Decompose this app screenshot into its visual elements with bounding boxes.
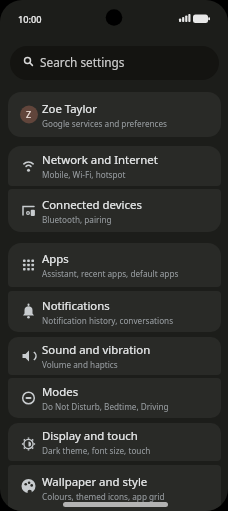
- staticText: Bluetooth, pairing: [42, 214, 112, 225]
- button[interactable]: Apps: [8, 243, 221, 287]
- staticText: Z: [26, 108, 32, 120]
- button[interactable]: Connected devices: [8, 189, 221, 232]
- staticText: Sound and vibration: [42, 342, 151, 358]
- staticText: Connected devices: [42, 197, 142, 213]
- button[interactable]: Sound and vibration: [8, 337, 221, 375]
- button[interactable]: Wallpaper and style: [8, 465, 221, 511]
- staticText: Zoe Taylor: [42, 101, 97, 117]
- button[interactable]: Modes: [8, 378, 221, 418]
- button[interactable]: Display and touch: [8, 423, 221, 461]
- button[interactable]: Notifications: [8, 291, 221, 332]
- staticText: Search settings: [40, 54, 125, 70]
- button[interactable]: Zoe Taylor: [8, 92, 221, 137]
- staticText: Google services and preferences: [42, 118, 168, 129]
- staticText: Volume and haptics: [42, 359, 118, 370]
- staticText: Assistant, recent apps, default apps: [42, 268, 179, 279]
- staticText: Notifications: [42, 298, 110, 314]
- staticText: Wallpaper and style: [42, 474, 148, 490]
- staticText: Mobile, Wi-Fi, hotspot: [42, 169, 126, 180]
- button[interactable]: Network and Internet: [8, 146, 221, 186]
- staticText: Notification history, conversations: [42, 315, 174, 326]
- staticText: Dark theme, font size, touch: [42, 445, 151, 456]
- staticText: Do Not Disturb, Bedtime, Driving: [42, 401, 169, 412]
- staticText: 10:00: [18, 13, 42, 26]
- staticText: Modes: [42, 384, 79, 400]
- staticText: Apps: [42, 251, 69, 267]
- button[interactable]: Search settings: [10, 46, 219, 80]
- staticText: Display and touch: [42, 428, 138, 444]
- staticText: Colours, themed icons, app grid: [42, 491, 165, 502]
- staticText: Network and Internet: [42, 152, 158, 168]
